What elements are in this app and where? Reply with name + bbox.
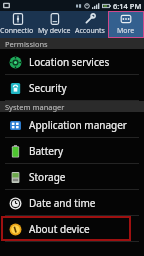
staticText: System manager <box>5 102 65 112</box>
staticText: Date and time <box>29 196 96 210</box>
staticText: My device <box>38 26 71 36</box>
staticText: Connection. <box>0 26 36 36</box>
button[interactable]: Security <box>0 75 144 101</box>
button[interactable]: Location services <box>0 49 144 75</box>
button[interactable]: My device <box>36 11 72 38</box>
staticText: Security <box>29 81 67 95</box>
staticText: Accounts <box>75 26 105 36</box>
staticText: Storage <box>29 170 66 184</box>
button[interactable]: More <box>108 11 144 38</box>
staticText: Application manager <box>29 118 127 132</box>
staticText: Location services <box>29 55 110 69</box>
staticText: About device <box>29 222 90 236</box>
staticText: Battery <box>29 144 64 158</box>
button[interactable]: Application manager <box>0 112 144 138</box>
button[interactable]: Date and time <box>0 190 144 216</box>
button[interactable]: Storage <box>0 164 144 190</box>
button[interactable]: Connection. <box>0 11 36 38</box>
button[interactable]: Battery <box>0 138 144 164</box>
button[interactable]: Accounts <box>72 11 108 38</box>
button[interactable]: About device <box>0 216 144 242</box>
staticText: Permissions <box>5 39 48 49</box>
staticText: More <box>117 26 135 36</box>
staticText: 6:14 PM <box>113 1 142 11</box>
